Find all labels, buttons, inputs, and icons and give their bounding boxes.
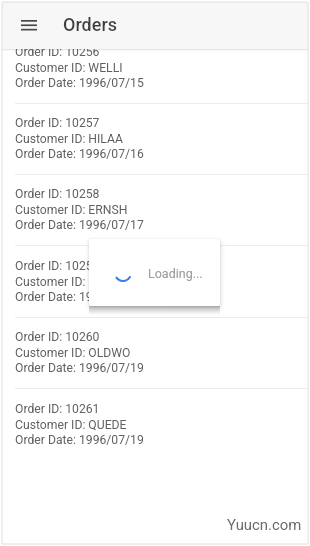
button[interactable]: Order ID: 10259 [2,247,308,318]
button[interactable]: Order ID: 10257 [2,104,308,175]
staticText: Customer ID: HILAA [15,132,123,146]
staticText: Orders [63,14,118,35]
staticText: Customer ID: ERNSH [15,203,128,217]
staticText: Order Date: 1996/07/16 [15,147,144,161]
staticText: Order ID: 10261 [15,402,100,416]
staticText: Order Date: 1996/07/18 [15,290,144,304]
staticText: Customer ID: CENTC [15,275,127,289]
staticText: Order Date: 1996/07/19 [15,433,144,447]
staticText: Customer ID: OLDWO [15,346,131,360]
button[interactable]: Open navigation menu [17,15,39,37]
staticText: Customer ID: WELLI [15,61,123,75]
button[interactable]: Order ID: 10256 [2,49,308,104]
staticText: Yuucn.com [227,516,302,533]
staticText: Order ID: 10256 [15,49,100,59]
staticText: Order ID: 10259 [15,259,100,273]
button[interactable]: Order ID: 10260 [2,318,308,389]
staticText: Order Date: 1996/07/15 [15,76,144,90]
staticText: Order Date: 1996/07/19 [15,361,144,375]
staticText: Order ID: 10257 [15,116,100,130]
staticText: Customer ID: QUEDE [15,418,127,432]
staticText: Loading... [148,266,203,281]
staticText: Order ID: 10258 [15,187,100,201]
staticText: Order ID: 10260 [15,330,100,344]
button[interactable]: Order ID: 10261 [2,390,308,461]
button[interactable]: Order ID: 10258 [2,175,308,246]
staticText: Order Date: 1996/07/17 [15,218,144,232]
